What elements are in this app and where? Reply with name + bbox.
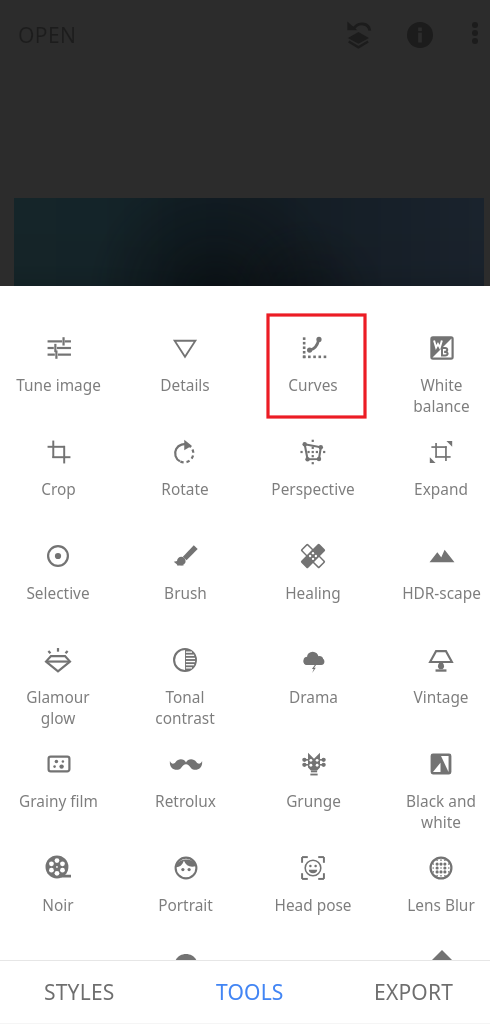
staticText: Details [160, 375, 210, 396]
staticText: White balance [413, 375, 470, 416]
staticText: HDR-scape [402, 583, 481, 604]
button[interactable]: More options [455, 13, 490, 53]
staticText: Selective [26, 583, 90, 604]
button[interactable]: Curves [250, 316, 376, 416]
staticText: Grunge [286, 791, 341, 812]
staticText: Portrait [158, 895, 213, 916]
staticText: Noir [42, 895, 74, 916]
button[interactable]: Healing [250, 524, 376, 624]
staticText: OPEN [18, 21, 77, 50]
staticText: Brush [164, 583, 207, 604]
staticText: Expand [414, 479, 468, 500]
button[interactable]: Black and white [378, 732, 490, 832]
button[interactable]: Rotate [122, 420, 248, 520]
button[interactable]: STYLES [0, 961, 158, 1023]
button[interactable]: Lens Blur [378, 836, 490, 936]
staticText: Tune image [16, 375, 101, 396]
button[interactable]: Grunge [250, 732, 376, 832]
button[interactable]: Tonal contrast [122, 628, 248, 728]
staticText: Head pose [274, 895, 352, 916]
staticText: TOOLS [216, 978, 284, 1007]
button[interactable]: Tune image [0, 316, 121, 416]
staticText: Black and white [406, 791, 476, 832]
staticText: Retrolux [155, 791, 216, 812]
button[interactable]: Retrolux [122, 732, 248, 832]
button[interactable]: TOOLS [168, 961, 331, 1023]
button[interactable]: White balance [378, 316, 490, 416]
button[interactable]: Head pose [250, 836, 376, 936]
staticText: Grainy film [19, 791, 98, 812]
button[interactable]: Brush [122, 524, 248, 624]
button[interactable]: Details [122, 316, 248, 416]
button[interactable]: Info [398, 13, 442, 57]
staticText: Tonal contrast [155, 687, 215, 728]
button[interactable]: HDR-scape [378, 524, 490, 624]
button[interactable]: Selective [0, 524, 121, 624]
staticText: Vintage [413, 687, 469, 708]
button[interactable]: Portrait [122, 836, 248, 936]
button[interactable]: EXPORT [337, 961, 490, 1023]
button[interactable]: Grainy film [0, 732, 121, 832]
button[interactable]: OPEN [4, 14, 91, 57]
button[interactable]: Noir [0, 836, 121, 936]
staticText: Drama [289, 687, 338, 708]
staticText: Crop [41, 479, 76, 500]
button[interactable]: Crop [0, 420, 121, 520]
staticText: EXPORT [374, 978, 454, 1007]
staticText: Glamour glow [26, 687, 90, 728]
staticText: Healing [285, 583, 341, 604]
staticText: Lens Blur [407, 895, 475, 916]
staticText: Perspective [271, 479, 355, 500]
button[interactable]: Undo [337, 13, 381, 57]
button[interactable]: Glamour glow [0, 628, 121, 728]
button[interactable]: Vintage [378, 628, 490, 728]
staticText: Rotate [161, 479, 209, 500]
staticText: STYLES [44, 978, 115, 1007]
staticText: Curves [288, 375, 338, 396]
button[interactable]: Perspective [250, 420, 376, 520]
button[interactable]: Drama [250, 628, 376, 728]
button[interactable]: Expand [378, 420, 490, 520]
